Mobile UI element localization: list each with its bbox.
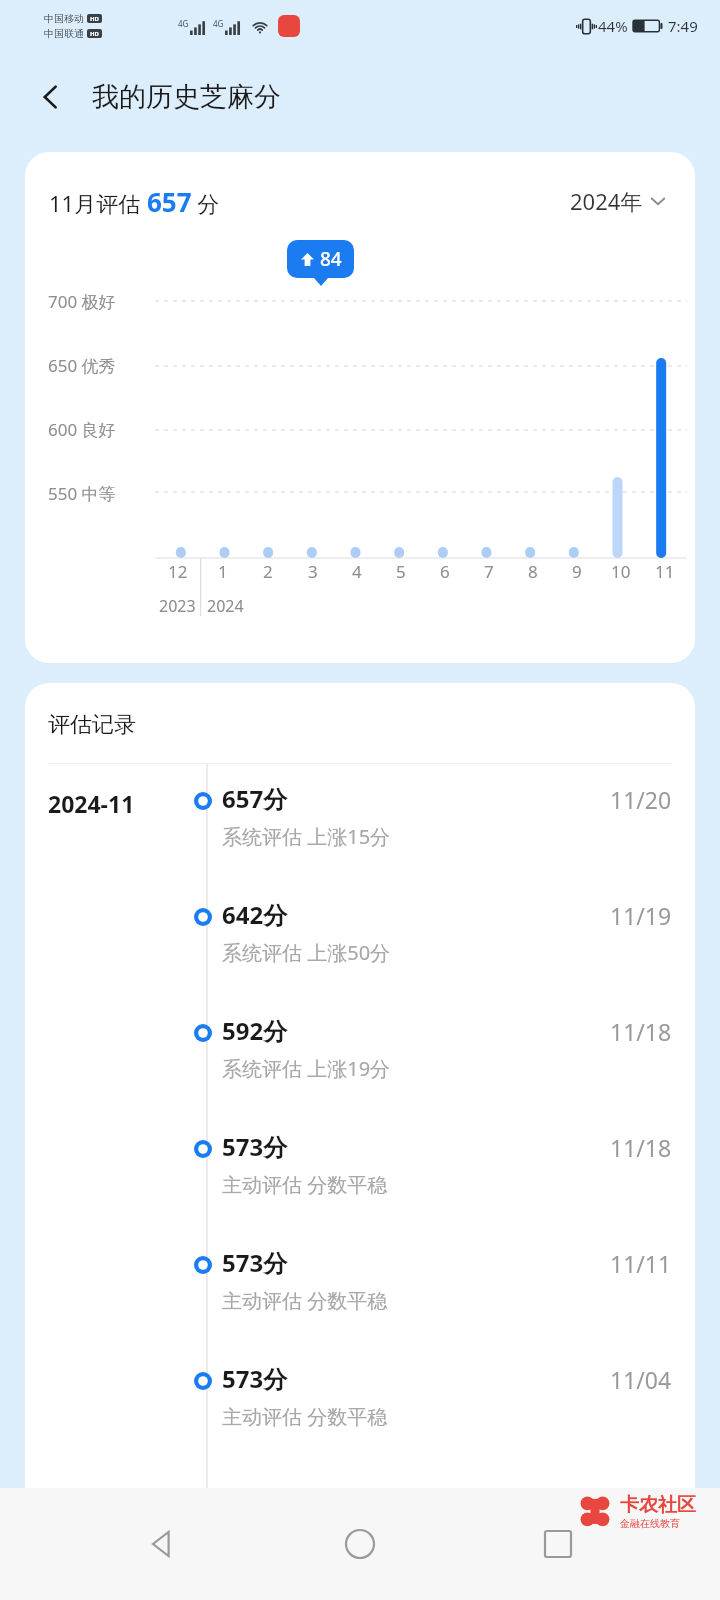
staticText: 主动评估 分数平稳 — [222, 1171, 388, 1198]
staticText: 11/18 — [610, 1016, 672, 1047]
staticText: 44% — [598, 16, 628, 36]
staticText: 2024-11 — [48, 788, 135, 819]
staticText: 11月评估 657 分 — [49, 184, 220, 219]
button[interactable]: 2024年 — [566, 182, 671, 220]
staticText: 12 — [168, 560, 188, 583]
button[interactable]: 2024-11 — [25, 780, 695, 896]
staticText: 573分 — [222, 1362, 288, 1395]
staticText: 2 — [263, 560, 273, 583]
staticText: 2024 — [207, 595, 244, 617]
staticText: 中国移动 — [44, 12, 84, 25]
staticText: 金融在线教育 — [620, 1517, 680, 1530]
staticText: 2023 — [159, 595, 196, 617]
staticText: 11/04 — [610, 1364, 672, 1395]
staticText: 1 — [218, 560, 228, 583]
staticText: 卡农社区 — [620, 1493, 696, 1517]
staticText: 11/20 — [610, 784, 672, 815]
staticText: 592分 — [222, 1014, 288, 1047]
button[interactable]: Home — [324, 1508, 396, 1580]
staticText: 11/18 — [610, 1132, 672, 1163]
button[interactable]: Back — [24, 70, 78, 124]
button[interactable]: 592分 — [25, 1012, 695, 1128]
staticText: 中国联通 — [44, 27, 84, 40]
staticText: 系统评估 上涨15分 — [222, 823, 391, 850]
staticText: 11/19 — [610, 900, 672, 931]
staticText: 3 — [308, 560, 318, 583]
staticText: 9 — [572, 560, 582, 583]
staticText: 4 — [352, 560, 362, 583]
staticText: 4G — [178, 18, 189, 29]
staticText: 系统评估 上涨50分 — [222, 939, 391, 966]
staticText: 系统评估 上涨19分 — [222, 1055, 391, 1082]
button[interactable]: 573分 — [25, 1360, 695, 1476]
staticText: 11/11 — [610, 1248, 672, 1279]
staticText: 11 — [655, 560, 675, 583]
staticText: 600 良好 — [48, 418, 116, 441]
staticText: 642分 — [222, 898, 288, 931]
button[interactable]: 573分 — [25, 1128, 695, 1244]
staticText: 10 — [611, 560, 631, 583]
staticText: 700 极好 — [48, 290, 116, 313]
staticText: 我的历史芝麻分 — [92, 80, 281, 114]
staticText: 6 — [440, 560, 450, 583]
button[interactable]: 573分 — [25, 1244, 695, 1360]
button[interactable]: Recents — [522, 1508, 594, 1580]
staticText: 657分 — [222, 782, 288, 815]
button[interactable]: 642分 — [25, 896, 695, 1012]
staticText: 5 — [396, 560, 406, 583]
staticText: 573分 — [222, 1130, 288, 1163]
staticText: 7:49 — [668, 16, 698, 36]
staticText: 550 中等 — [48, 482, 116, 505]
staticText: HD — [90, 30, 99, 38]
staticText: 主动评估 分数平稳 — [222, 1287, 388, 1314]
staticText: 7 — [484, 560, 494, 583]
staticText: 4G — [213, 18, 224, 29]
staticText: 主动评估 分数平稳 — [222, 1403, 388, 1430]
staticText: 84 — [320, 246, 342, 272]
button[interactable]: Back — [126, 1508, 198, 1580]
staticText: 评估记录 — [48, 711, 136, 739]
staticText: HD — [90, 15, 99, 23]
staticText: 573分 — [222, 1246, 288, 1279]
staticText: 2024年 — [570, 186, 643, 216]
staticText: 8 — [528, 560, 538, 583]
staticText: 650 优秀 — [48, 354, 116, 377]
